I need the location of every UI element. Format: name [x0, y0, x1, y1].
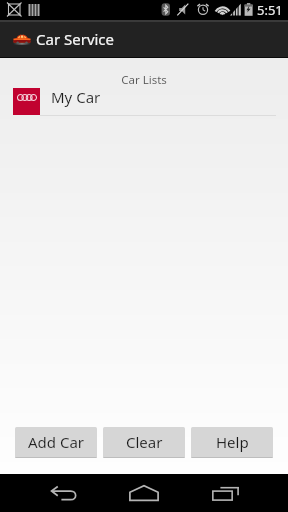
button[interactable]: My Car	[0, 88, 288, 116]
button[interactable]: Clear	[103, 427, 185, 458]
button[interactable]: Recent apps	[190, 474, 262, 512]
button[interactable]: Back	[28, 474, 100, 512]
button[interactable]: Home	[108, 474, 180, 512]
staticText: My Car	[51, 87, 101, 107]
staticText: 5:51	[257, 1, 283, 19]
staticText: Car Lists	[0, 72, 288, 88]
button[interactable]: Help	[191, 427, 273, 458]
button[interactable]: Add Car	[15, 427, 97, 458]
staticText: Car Service	[36, 29, 115, 49]
staticText: Clear	[126, 432, 163, 452]
staticText: Help	[216, 432, 249, 452]
staticText: Add Car	[28, 432, 85, 452]
